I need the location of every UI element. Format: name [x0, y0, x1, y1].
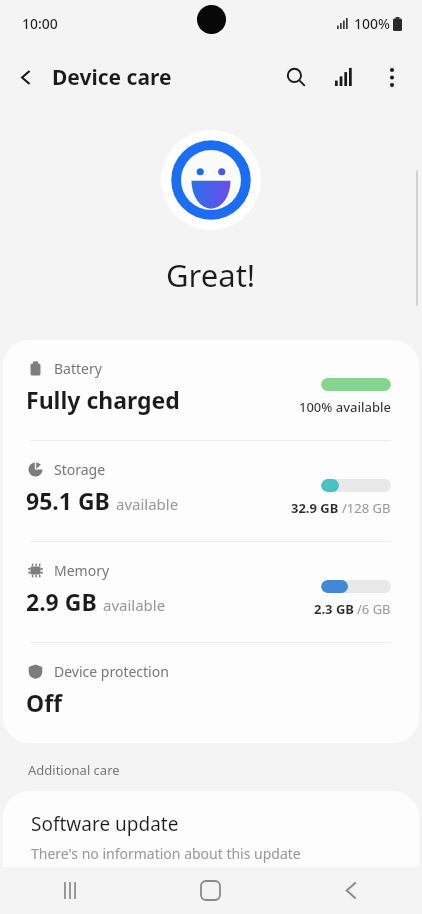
staticText: available — [103, 595, 166, 615]
button[interactable]: More options — [368, 53, 416, 101]
staticText: 100% — [354, 14, 390, 33]
staticText: Device protection — [54, 662, 169, 681]
staticText: Software update — [31, 811, 179, 837]
button[interactable]: Storage — [3, 441, 419, 542]
staticText: 100% available — [299, 398, 391, 416]
staticText: Memory — [54, 561, 110, 580]
staticText: 32.9 GB — [291, 499, 339, 517]
staticText: Device care — [52, 63, 172, 92]
staticText: available — [116, 494, 179, 514]
staticText: 10:00 — [22, 14, 58, 33]
staticText: Additional care — [28, 761, 120, 779]
staticText: Storage — [54, 460, 106, 479]
button[interactable]: Search — [272, 53, 320, 101]
staticText: /128 GB — [342, 499, 391, 517]
staticText: Fully charged — [26, 384, 180, 415]
button[interactable]: Software update — [3, 791, 419, 889]
button[interactable]: Back — [281, 867, 422, 914]
button[interactable]: Memory — [3, 542, 419, 643]
button[interactable]: Recent apps — [0, 867, 140, 914]
staticText: /6 GB — [357, 600, 391, 618]
staticText: There's no information about this update — [31, 844, 301, 863]
button[interactable]: Usage statistics — [320, 53, 368, 101]
staticText: Off — [26, 687, 62, 718]
staticText: 95.1 GB — [26, 485, 110, 516]
button[interactable]: Device protection — [3, 643, 419, 743]
staticText: 2.3 GB — [314, 600, 354, 618]
button[interactable]: Home — [140, 867, 281, 914]
staticText: 2.9 GB — [26, 586, 97, 617]
button[interactable]: Battery — [3, 340, 419, 441]
staticText: Battery — [54, 359, 102, 378]
button[interactable]: Back — [0, 51, 52, 103]
staticText: Great! — [166, 254, 256, 296]
